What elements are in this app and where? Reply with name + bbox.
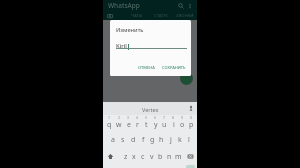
button[interactable]: b <box>156 149 165 164</box>
staticText: t <box>145 120 148 130</box>
staticText: e <box>127 120 131 130</box>
staticText: k <box>178 135 182 145</box>
staticText: 5 <box>145 115 148 120</box>
staticText: v <box>150 152 154 162</box>
button[interactable]: l <box>184 133 193 147</box>
button[interactable]: Vertex <box>142 106 159 113</box>
button[interactable]: 2 <box>114 115 124 131</box>
button[interactable]: v <box>147 149 156 164</box>
button[interactable]: m <box>174 149 183 164</box>
button[interactable]: 5 <box>142 115 151 131</box>
button[interactable]: СТАТУС <box>149 11 173 20</box>
staticText: u <box>162 120 167 130</box>
button[interactable]: Camera <box>105 11 114 20</box>
staticText: 6 <box>154 115 157 120</box>
button[interactable]: 1 <box>104 115 114 131</box>
staticText: i <box>173 120 175 130</box>
button[interactable]: ЗВОНКИ <box>173 11 197 20</box>
staticText: ЗВОНКИ <box>176 13 194 19</box>
button[interactable]: 8 <box>169 115 178 131</box>
button[interactable]: 0 <box>187 115 196 131</box>
button[interactable]: g <box>148 133 157 147</box>
button[interactable]: a <box>108 133 118 147</box>
staticText: 7 <box>163 115 166 120</box>
staticText: Изменить <box>116 26 144 34</box>
staticText: d <box>131 135 136 145</box>
staticText: l <box>188 135 190 145</box>
button[interactable]: ЧАТЫ <box>124 11 149 20</box>
button[interactable]: z <box>122 149 130 164</box>
staticText: x <box>132 152 136 162</box>
staticText: b <box>158 152 163 162</box>
button[interactable]: h <box>157 133 166 147</box>
staticText: g <box>150 135 155 145</box>
staticText: 9 <box>181 115 184 120</box>
button[interactable]: n <box>165 149 174 164</box>
button[interactable]: СОХРАНИТЬ <box>159 63 189 72</box>
staticText: ЧАТЫ <box>131 13 143 19</box>
staticText: Kiril <box>116 42 127 50</box>
staticText: 1 <box>108 115 111 120</box>
button[interactable]: Shift <box>104 149 116 164</box>
staticText: a <box>111 135 115 145</box>
button[interactable]: 4 <box>133 115 142 131</box>
button[interactable]: 9 <box>178 115 187 131</box>
staticText: c <box>141 152 145 162</box>
staticText: 3 <box>127 115 130 120</box>
staticText: j <box>170 135 172 145</box>
staticText: СТАТУС <box>154 13 169 19</box>
staticText: СОХРАНИТЬ <box>162 65 186 70</box>
staticText: h <box>159 135 164 145</box>
staticText: p <box>189 120 194 130</box>
button[interactable]: c <box>138 149 147 164</box>
staticText: w <box>116 120 122 130</box>
button[interactable]: ОТМЕНА <box>135 63 158 72</box>
button[interactable]: x <box>130 149 138 164</box>
button[interactable]: 3 <box>124 115 133 131</box>
staticText: WhatsApp <box>108 1 140 10</box>
button[interactable]: More options <box>185 1 195 11</box>
staticText: 0 <box>190 115 193 120</box>
staticText: 8 <box>172 115 175 120</box>
button[interactable]: Search <box>176 1 186 11</box>
button[interactable]: j <box>166 133 175 147</box>
staticText: 2 <box>118 115 121 120</box>
staticText: m <box>175 152 182 162</box>
staticText: r <box>136 120 139 130</box>
button[interactable]: d <box>128 133 138 147</box>
button[interactable]: 7 <box>160 115 169 131</box>
button[interactable]: Voice input <box>186 103 196 113</box>
staticText: f <box>142 135 145 145</box>
button[interactable]: s <box>118 133 128 147</box>
staticText: 4 <box>136 115 139 120</box>
staticText: s <box>121 135 125 145</box>
button[interactable]: Backspace <box>184 149 196 164</box>
button[interactable]: New chat <box>180 72 193 85</box>
staticText: z <box>124 152 128 162</box>
button[interactable]: f <box>138 133 148 147</box>
staticText: y <box>154 120 158 130</box>
button[interactable]: Enter <box>186 165 195 168</box>
staticText: n <box>167 152 172 162</box>
staticText: o <box>180 120 185 130</box>
button[interactable]: 6 <box>151 115 160 131</box>
button[interactable]: k <box>175 133 184 147</box>
staticText: q <box>107 120 112 130</box>
staticText: ОТМЕНА <box>138 65 155 70</box>
